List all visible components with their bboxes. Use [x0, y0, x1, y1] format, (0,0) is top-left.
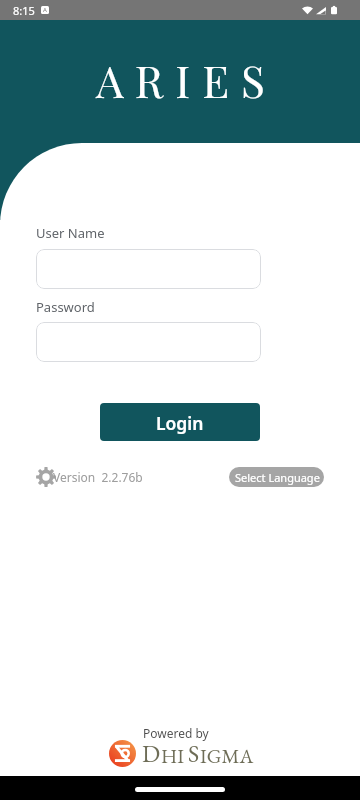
staticText: HI — [161, 743, 184, 769]
button[interactable]: Select Language — [229, 467, 324, 487]
staticText: Select Language — [235, 470, 320, 485]
staticText: User Name — [36, 224, 105, 242]
staticText: Password — [36, 298, 95, 316]
staticText: Login — [156, 411, 204, 435]
staticText: A — [43, 6, 47, 14]
button[interactable] — [36, 322, 261, 362]
staticText: Version 2.2.76b — [53, 469, 143, 485]
button[interactable]: Login — [100, 403, 260, 441]
staticText: S — [188, 738, 200, 769]
staticText: ARIES — [96, 50, 277, 109]
staticText: IGMA — [200, 743, 254, 769]
staticText: D — [142, 738, 161, 769]
button[interactable]: Settings — [36, 467, 56, 487]
staticText: Powered by — [143, 725, 209, 741]
staticText: 8:15 — [13, 3, 35, 18]
button[interactable] — [36, 249, 261, 289]
